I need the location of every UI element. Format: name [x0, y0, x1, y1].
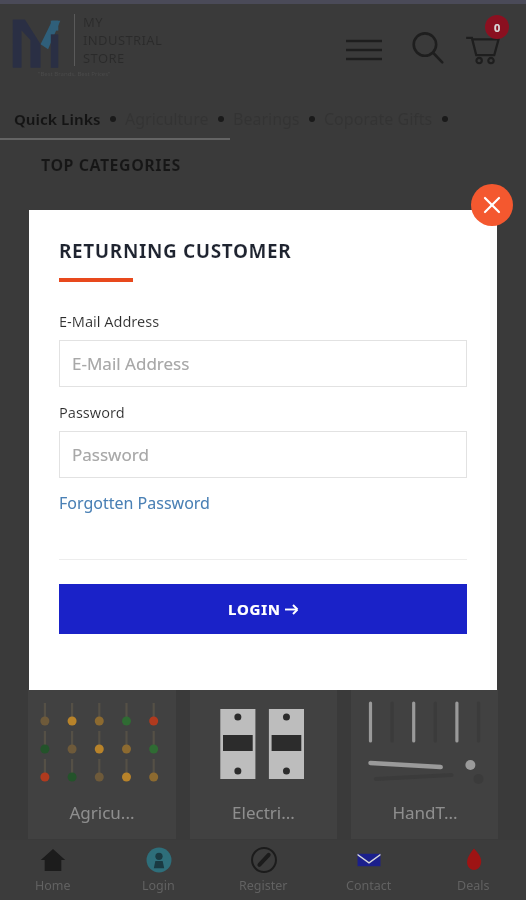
button[interactable]: HandT... [351, 689, 498, 839]
button[interactable]: Register [211, 840, 316, 900]
button[interactable]: Contact [316, 840, 421, 900]
button[interactable]: Login [106, 840, 211, 900]
button[interactable]: Search [404, 24, 452, 72]
staticText: 0 [494, 20, 501, 35]
staticText: INDUSTRIAL [83, 31, 163, 49]
staticText: HandT... [392, 801, 458, 824]
button[interactable]: LOGIN [59, 584, 467, 634]
staticText: Contact [346, 877, 392, 894]
button[interactable]: Electri... [190, 689, 337, 839]
button[interactable]: Close [471, 184, 513, 226]
staticText: Register [239, 877, 288, 894]
staticText: MY [83, 13, 103, 31]
staticText: Password [59, 402, 125, 422]
staticText: E-Mail Address [72, 352, 190, 375]
staticText: LOGIN [228, 599, 281, 619]
staticText: E-Mail Address [59, 311, 160, 331]
button[interactable]: Deals [421, 840, 526, 900]
button[interactable]: E-Mail Address [59, 340, 467, 387]
staticText: TOP CATEGORIES [41, 154, 181, 176]
button[interactable]: Agricu... [28, 689, 176, 839]
staticText: Forgotten Password [59, 492, 210, 514]
button[interactable]: Forgotten Password [59, 492, 210, 514]
staticText: Login [142, 877, 175, 894]
staticText: Electri... [232, 801, 295, 824]
staticText: STORE [83, 49, 125, 67]
staticText: "Best Brands, Best Prices" [38, 70, 111, 78]
staticText: Agricu... [69, 801, 135, 824]
button[interactable]: Password [59, 431, 467, 478]
button[interactable]: Cart [458, 24, 506, 72]
staticText: Quick Links [14, 109, 101, 129]
staticText: Home [35, 877, 71, 894]
staticText: Deals [457, 877, 490, 894]
button[interactable]: Home [0, 840, 106, 900]
staticText: RETURNING CUSTOMER [59, 238, 292, 264]
button[interactable]: Menu [340, 26, 388, 74]
staticText: Password [72, 443, 149, 466]
